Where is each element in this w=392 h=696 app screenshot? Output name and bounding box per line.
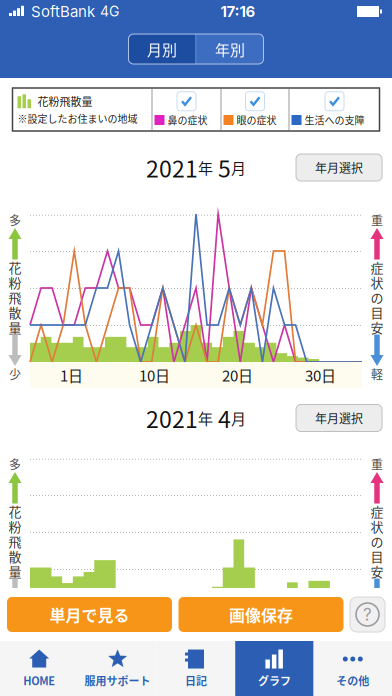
staticText: 1日 <box>60 364 83 386</box>
staticText: 30日 <box>305 364 336 386</box>
staticText: 日記 <box>185 672 207 688</box>
staticText: 5 <box>213 151 231 184</box>
button[interactable]: 日記 <box>157 641 235 696</box>
staticText: グラフ <box>258 672 291 688</box>
staticText: 症 <box>370 502 383 520</box>
staticText: の <box>370 288 383 306</box>
staticText: 年 <box>198 157 213 178</box>
staticText: 4G <box>100 3 119 20</box>
staticText: 軽 <box>371 365 383 383</box>
staticText: 生活への支障 <box>304 113 364 127</box>
staticText: SoftBank <box>31 2 95 20</box>
button[interactable]: 鼻の症状 <box>152 88 220 131</box>
button[interactable]: 画像保存 <box>178 597 343 632</box>
button[interactable]: 単月で見る <box>7 597 172 632</box>
staticText: 目 <box>370 547 383 565</box>
staticText: 月別 <box>147 38 177 60</box>
button[interactable]: 服用サポート <box>78 641 157 696</box>
staticText: 1日 <box>60 608 83 630</box>
staticText: ※設定したお住まいの地域 <box>17 111 137 126</box>
staticText: 目 <box>370 303 383 321</box>
staticText: 眼の症状 <box>236 113 276 127</box>
staticText: 状 <box>370 273 383 291</box>
button[interactable]: 生活への支障 <box>289 88 379 131</box>
staticText: 粉 <box>8 273 21 291</box>
staticText: その他 <box>336 672 369 688</box>
staticText: 多 <box>9 211 21 229</box>
staticText: 飛 <box>8 288 21 306</box>
staticText: 年 <box>198 407 213 429</box>
staticText: 重 <box>371 211 383 229</box>
staticText: 画像保存 <box>229 603 293 626</box>
staticText: 4 <box>213 401 231 435</box>
staticText: 安 <box>370 318 383 336</box>
staticText: 花 <box>8 258 21 276</box>
staticText: 散 <box>8 303 21 321</box>
staticText: 少 <box>9 365 21 383</box>
staticText: 2021 <box>146 401 198 435</box>
staticText: 量 <box>8 318 21 336</box>
staticText: 飛 <box>8 532 21 550</box>
staticText: 安 <box>370 562 383 580</box>
staticText: 花 <box>8 502 21 520</box>
button[interactable]: 年別 <box>196 34 263 64</box>
staticText: 20日 <box>222 608 253 630</box>
staticText: 17:16 <box>220 2 255 20</box>
staticText: 重 <box>371 455 383 473</box>
button[interactable]: HOME <box>0 641 78 696</box>
staticText: 花粉飛散量 <box>37 93 92 109</box>
staticText: 単月で見る <box>49 603 129 626</box>
staticText: 2021 <box>146 151 198 184</box>
button[interactable]: その他 <box>314 641 392 696</box>
staticText: HOME <box>23 672 55 688</box>
staticText: 多 <box>9 455 21 473</box>
staticText: 月 <box>231 407 246 429</box>
staticText: 鼻の症状 <box>167 113 207 127</box>
staticText: の <box>370 532 383 550</box>
staticText: 状 <box>370 517 383 535</box>
staticText: 20日 <box>222 364 253 386</box>
staticText: 年別 <box>215 38 245 60</box>
button[interactable]: 年月選択 <box>296 404 382 431</box>
staticText: 粉 <box>8 517 21 535</box>
staticText: 年月選択 <box>315 159 363 176</box>
staticText: 年月選択 <box>315 409 363 427</box>
staticText: 散 <box>8 547 21 565</box>
button[interactable]: 年月選択 <box>296 154 382 181</box>
staticText: 量 <box>8 562 21 580</box>
staticText: ? <box>363 604 372 625</box>
staticText: 月 <box>231 157 246 178</box>
staticText: 症 <box>370 258 383 276</box>
button[interactable]: グラフ <box>235 641 314 696</box>
staticText: 10日 <box>139 364 170 386</box>
button[interactable]: 月別 <box>128 34 195 64</box>
staticText: 軽 <box>371 609 383 627</box>
button[interactable]: Help <box>350 597 385 632</box>
button[interactable]: 眼の症状 <box>221 88 288 131</box>
staticText: 服用サポート <box>85 672 151 688</box>
